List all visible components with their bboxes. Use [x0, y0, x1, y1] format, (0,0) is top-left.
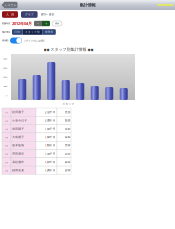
staticText: 高松優作 — [12, 160, 24, 164]
staticText: 1000 — [3, 85, 7, 88]
staticText: 坂本龍馬 — [12, 144, 24, 147]
staticText: 時間別 — [44, 30, 53, 34]
staticText: 2012年04月 — [12, 21, 32, 26]
staticText: (7) — [5, 160, 8, 164]
staticText: 前田陽子 — [12, 127, 24, 130]
staticText: (5) — [5, 144, 8, 147]
staticText: (1) — [5, 110, 8, 114]
staticText: 32.60 — [65, 127, 70, 130]
staticText: 39.00 — [65, 144, 70, 147]
staticText: 24.30 — [65, 160, 70, 164]
button[interactable]: Toggle — [10, 37, 22, 43]
staticText: 松田優子 — [12, 110, 24, 114]
staticText: 39.30 — [65, 110, 70, 114]
button[interactable]: スタッフ別 — [23, 29, 42, 35]
staticText: 2,120千円 — [45, 110, 56, 114]
staticText: 集計情報 — [79, 2, 95, 8]
staticText: スタッフ別 — [25, 30, 40, 34]
staticText: 0 — [6, 94, 7, 97]
staticText: 村田遼汰 — [12, 152, 24, 155]
staticText: 1,470千円 — [45, 160, 56, 164]
staticText: 表示順 — [2, 39, 8, 42]
staticText: (6) — [5, 152, 8, 155]
staticText: 3000 — [3, 66, 7, 69]
button[interactable]: 日別 — [12, 29, 23, 35]
button[interactable]: − — [34, 21, 50, 26]
staticText: (2) — [5, 119, 8, 122]
staticText: スタッフ — [62, 102, 74, 106]
staticText: 小泉今日子 — [12, 119, 27, 122]
staticText: 1,850千円 — [45, 144, 56, 147]
staticText: (4) — [5, 135, 8, 139]
staticText: 植野友美 — [12, 168, 24, 172]
staticText: 2000 — [3, 75, 7, 78]
staticText: 表示 — [55, 22, 59, 25]
button[interactable]: 時間別 — [42, 29, 56, 35]
button[interactable]: 表示 — [52, 21, 62, 26]
staticText: 4000 — [3, 57, 7, 60]
staticText: 32.60 — [65, 135, 70, 139]
staticText: ※チェックなしは全部 — [24, 39, 44, 42]
staticText: 45.00 — [65, 119, 70, 122]
staticText: システム — [5, 3, 17, 7]
staticText: ＋ — [44, 21, 47, 26]
staticText: 04/01〜04/30 — [41, 13, 54, 16]
staticText: 1,920千円 — [45, 135, 56, 139]
staticText: 2,780千円 — [45, 119, 56, 122]
staticText: 集計単位 — [2, 30, 10, 33]
button[interactable]: グラフ — [21, 11, 38, 18]
staticText: 1,740千円 — [45, 152, 56, 155]
button[interactable]: Back — [1, 2, 17, 8]
staticText: 1,280千円 — [45, 168, 56, 172]
staticText: 人 員 — [6, 13, 14, 16]
staticText: グラフ — [25, 13, 34, 16]
staticText: (3) — [5, 127, 8, 130]
staticText: 大島優子 — [12, 135, 24, 139]
staticText: − — [37, 21, 39, 26]
staticText: 20.00 — [65, 168, 70, 172]
staticText: 日別 — [14, 30, 20, 34]
staticText: 29.00 — [65, 152, 70, 155]
staticText: ◆◆ スタッフ別集計情報 ◆◆ — [43, 47, 93, 52]
staticText: 対象年月 — [2, 22, 10, 25]
button[interactable]: 人 員 — [2, 11, 18, 18]
staticText: (8) — [5, 169, 8, 172]
staticText: 1,920千円 — [45, 127, 56, 130]
